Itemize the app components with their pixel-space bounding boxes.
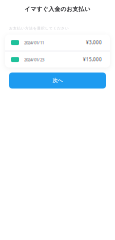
button[interactable]: 次へ	[9, 72, 106, 88]
staticText: イマすぐ入金のお支払い	[24, 5, 90, 13]
staticText: 2024/01/11	[24, 40, 44, 45]
staticText: お支払い方法を選択してください	[9, 26, 69, 30]
staticText: 次へ	[52, 77, 62, 84]
staticText: ¥15,000	[83, 56, 102, 63]
staticText: 2024/01/23	[24, 57, 44, 62]
staticText: ¥3,000	[86, 39, 102, 46]
